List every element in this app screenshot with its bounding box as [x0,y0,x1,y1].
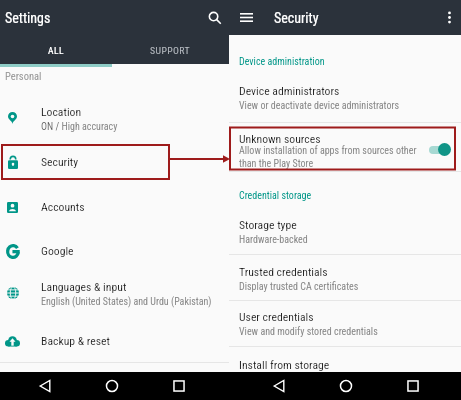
staticText: Accounts [41,200,85,214]
button[interactable]: Home [337,377,355,395]
staticText: Backup & reset [41,334,110,348]
staticText: Hardware-backed [239,234,308,246]
button[interactable]: Backup & reset [0,324,229,358]
staticText: Device administration [239,56,325,68]
staticText: View and modify stored credentials [239,326,378,338]
staticText: Settings [5,10,51,26]
button[interactable]: User credentials [229,310,461,343]
staticText: Location [41,105,82,119]
button[interactable]: Trusted credentials [229,265,461,298]
button[interactable]: More options [437,5,461,29]
staticText: Install from storage [239,358,330,371]
staticText: Personal [5,70,42,82]
staticText: Trusted credentials [239,265,328,279]
staticText: Allow installation of apps from sources … [239,145,417,169]
staticText: Security [274,10,319,26]
staticText: Device administrators [239,84,340,98]
button[interactable]: Back [36,377,54,395]
staticText: View or deactivate device administrators [239,100,400,112]
button[interactable]: Install from storage [229,358,461,371]
button[interactable]: Navigation menu [234,5,258,29]
button[interactable]: ALL [0,37,112,64]
staticText: ON / High accuracy [41,121,118,133]
staticText: ALL [48,45,65,56]
button[interactable]: Unknown sources [229,132,461,170]
staticText: Credential storage [239,190,312,202]
button[interactable]: SUPPORT [112,37,229,64]
button[interactable]: Device administrators [229,84,461,118]
button[interactable]: Recents [404,377,422,395]
staticText: Google [41,244,74,258]
button[interactable]: Recents [170,377,188,395]
button[interactable]: Google [0,234,229,268]
button[interactable]: Languages & input [0,273,229,313]
staticText: Languages & input [41,280,127,294]
staticText: Storage type [239,218,297,232]
button[interactable]: Security [0,145,229,179]
button[interactable]: Back [270,377,288,395]
button[interactable]: Accounts [0,190,229,224]
button[interactable]: Home [103,377,121,395]
staticText: English (United States) and Urdu (Pakist… [41,296,212,308]
staticText: Security [41,155,79,169]
staticText: SUPPORT [150,45,191,56]
staticText: Unknown sources [239,132,321,146]
staticText: User credentials [239,310,314,324]
button[interactable]: Location [0,98,229,138]
button[interactable]: Search [203,6,227,30]
button[interactable]: Storage type [229,218,461,251]
staticText: Display trusted CA certificates [239,281,359,293]
